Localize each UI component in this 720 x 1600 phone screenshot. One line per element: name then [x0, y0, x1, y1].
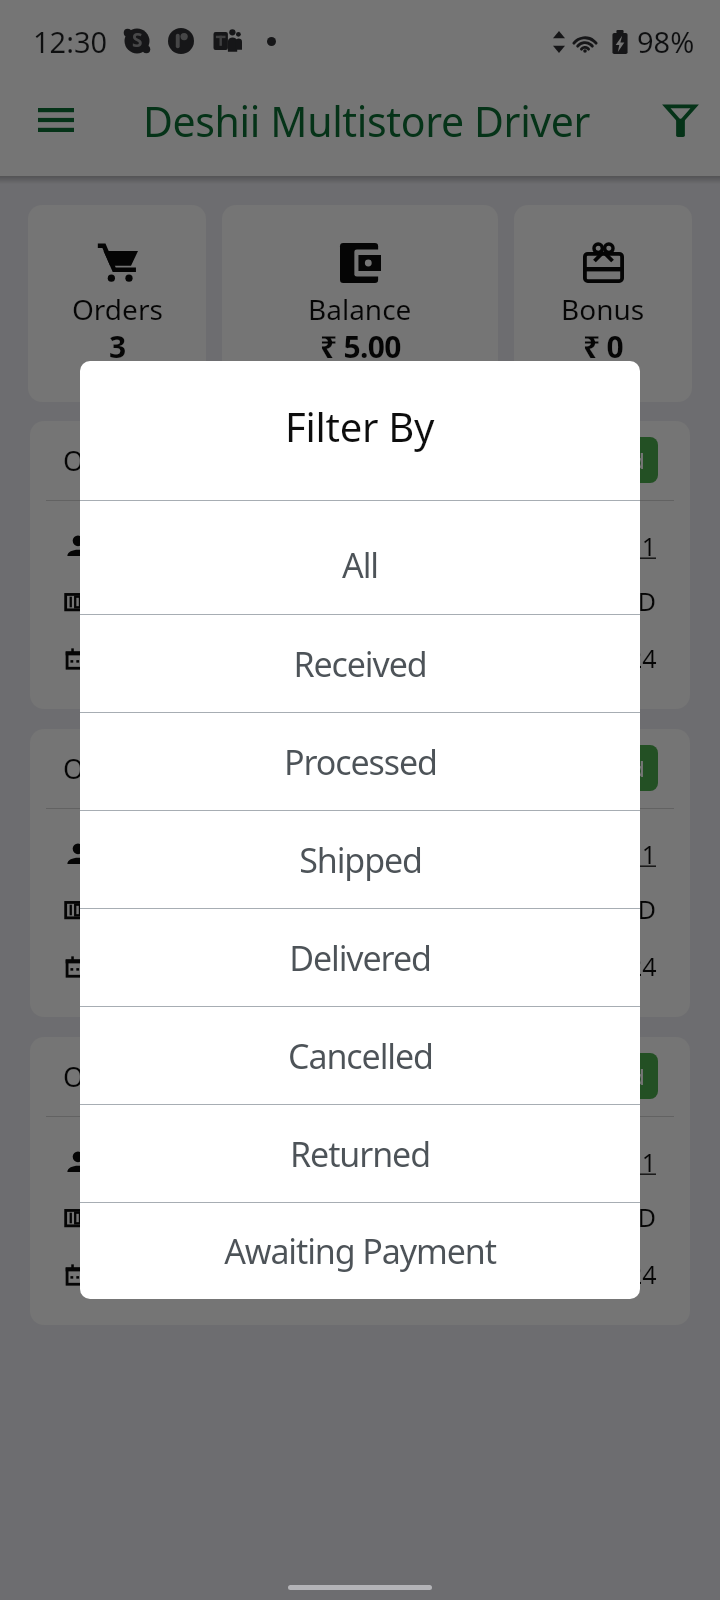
staticText: 9876543211 — [513, 837, 657, 871]
button[interactable]: Order #1032 — [30, 421, 690, 709]
staticText: Orders — [72, 290, 163, 328]
button[interactable]: Processed — [80, 713, 640, 810]
button[interactable]: Returned — [80, 1105, 640, 1202]
staticText: 10 Jun 2024 — [520, 1257, 657, 1291]
staticText: Returned — [290, 1131, 430, 1177]
staticText: Shipped — [299, 837, 422, 883]
button[interactable]: Balance — [222, 205, 498, 402]
staticText: Bonus — [561, 290, 645, 328]
staticText: Received — [553, 1061, 645, 1091]
staticText: 11 Jun 2024 — [520, 949, 657, 983]
staticText: S — [132, 27, 143, 53]
staticText: Order #1032 — [63, 442, 224, 479]
staticText: Filter By — [285, 399, 435, 453]
staticText: ₹ 0 — [583, 326, 624, 367]
button[interactable]: Received — [540, 437, 658, 483]
button[interactable]: Received — [80, 615, 640, 712]
button[interactable]: Delivered — [80, 909, 640, 1006]
staticText: Received — [293, 641, 427, 687]
staticText: Cancelled — [288, 1033, 433, 1079]
staticText: COD — [603, 584, 657, 618]
button[interactable]: All — [80, 516, 640, 614]
staticText: All — [342, 542, 378, 588]
staticText: Order #1030 — [63, 1058, 224, 1095]
staticText: 12 Jun 2024 — [520, 641, 657, 675]
button[interactable]: Received — [540, 745, 658, 791]
button[interactable]: Order #1030 — [30, 1037, 690, 1325]
staticText: Awaiting Payment — [224, 1228, 496, 1274]
staticText: COD — [603, 1200, 657, 1234]
staticText: 9876543211 — [513, 529, 657, 563]
staticText: 9876543211 — [513, 1145, 657, 1179]
button[interactable]: Awaiting Payment — [80, 1203, 640, 1299]
button[interactable]: Received — [540, 1053, 658, 1099]
button[interactable]: Bonus — [514, 205, 692, 402]
staticText: Processed — [284, 739, 437, 785]
staticText: COD — [603, 892, 657, 926]
staticText: Order #1031 — [63, 750, 224, 787]
button[interactable]: Open navigation menu — [22, 86, 90, 154]
staticText: Received — [553, 445, 645, 475]
button[interactable]: Filter — [646, 86, 714, 154]
staticText: Balance — [308, 290, 412, 328]
button[interactable]: Shipped — [80, 811, 640, 908]
staticText: ₹ 5.00 — [320, 326, 401, 367]
staticText: Deshii Multistore Driver — [143, 93, 591, 149]
staticText: Delivered — [289, 935, 431, 981]
button[interactable]: Order #1031 — [30, 729, 690, 1017]
staticText: 12:30 — [33, 22, 108, 61]
staticText: 3 — [109, 326, 126, 367]
button[interactable]: Orders — [28, 205, 206, 402]
button[interactable]: Cancelled — [80, 1007, 640, 1104]
staticText: 98% — [637, 22, 695, 61]
staticText: Received — [553, 753, 645, 783]
